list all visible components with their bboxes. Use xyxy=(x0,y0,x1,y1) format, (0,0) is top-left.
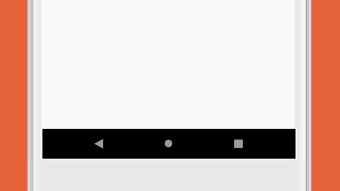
button[interactable]: Recent apps xyxy=(225,129,253,158)
button[interactable]: Home xyxy=(155,129,183,158)
button[interactable]: Back xyxy=(85,129,113,158)
